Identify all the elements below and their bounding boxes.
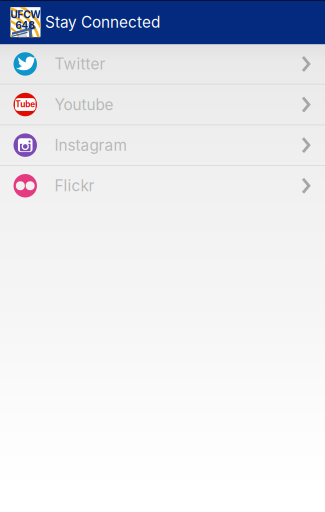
staticText: UFCW (10, 9, 40, 21)
staticText: Instagram (54, 136, 126, 154)
staticText: Stay Connected (45, 13, 160, 31)
staticText: Tube (15, 99, 35, 109)
staticText: 648 (15, 19, 35, 31)
button[interactable]: Instagram (0, 125, 325, 166)
staticText: Youtube (54, 95, 113, 114)
staticText: Twitter (54, 55, 105, 73)
button[interactable]: Flickr (0, 166, 325, 205)
button[interactable]: Twitter (0, 44, 325, 85)
button[interactable]: Tube (0, 85, 325, 125)
staticText: Flickr (54, 176, 94, 195)
